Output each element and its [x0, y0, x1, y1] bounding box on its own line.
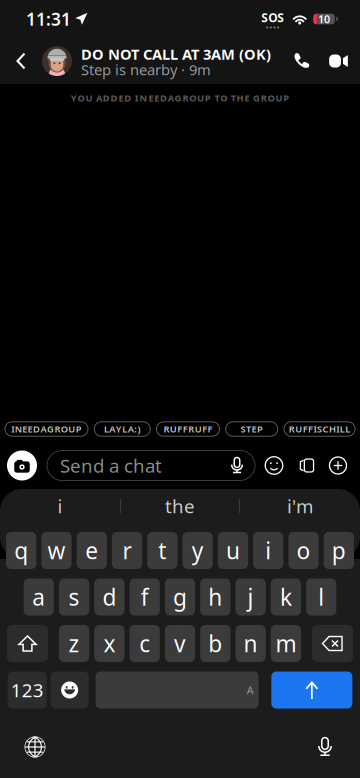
button[interactable]: A [96, 671, 259, 708]
staticText: l [318, 582, 324, 612]
staticText: RUFFISCHILL [289, 423, 350, 435]
button[interactable]: a [24, 578, 54, 615]
staticText: f [141, 582, 149, 612]
staticText: LAYLA:) [104, 423, 141, 435]
staticText: i [265, 535, 271, 565]
staticText: i [57, 494, 62, 518]
button[interactable]: Video call [321, 41, 356, 81]
button[interactable]: m [271, 625, 301, 662]
button[interactable]: Stickers [290, 449, 322, 481]
button[interactable]: k [271, 578, 301, 615]
staticText: x [103, 628, 115, 658]
button[interactable]: z [59, 625, 89, 662]
staticText: 10 [318, 12, 330, 26]
button[interactable]: h [200, 578, 230, 615]
staticText: 123 [11, 678, 44, 702]
staticText: Send a chat [60, 453, 162, 478]
button[interactable]: f [130, 578, 160, 615]
button[interactable] [312, 625, 353, 662]
button[interactable]: e [77, 532, 107, 569]
staticText: i'm [287, 494, 313, 518]
button[interactable]: c [130, 625, 160, 662]
button[interactable]: i'm [240, 489, 360, 523]
button[interactable]: t [147, 532, 177, 569]
button[interactable]: l [306, 578, 336, 615]
staticText: m [275, 628, 296, 658]
staticText: c [139, 628, 150, 658]
button[interactable]: the [121, 489, 239, 523]
button[interactable]: i [0, 489, 120, 523]
staticText: t [158, 535, 166, 565]
staticText: 11:31 [26, 7, 71, 30]
button[interactable]: More [322, 449, 354, 481]
button[interactable]: RUFFISCHILL [284, 419, 355, 439]
button[interactable]: r [112, 532, 142, 569]
staticText: RUFFRUFF [163, 423, 213, 435]
button[interactable]: INEEDAGROUP [5, 419, 88, 439]
staticText: STEP [241, 423, 263, 435]
button[interactable]: j [235, 578, 266, 615]
staticText: r [122, 535, 131, 565]
button[interactable]: x [94, 625, 124, 662]
button[interactable]: Camera [7, 450, 37, 480]
staticText: s [69, 582, 80, 612]
staticText: b [208, 628, 222, 658]
staticText: g [173, 582, 187, 612]
staticText: A [247, 683, 254, 697]
staticText: p [332, 535, 346, 565]
staticText: k [280, 582, 292, 612]
button[interactable] [51, 671, 89, 708]
staticText: SOS [261, 9, 284, 25]
staticText: e [85, 535, 98, 565]
button[interactable]: Voice input [303, 725, 347, 769]
button[interactable]: 123 [8, 671, 47, 708]
button[interactable]: q [6, 532, 36, 569]
button[interactable]: b [200, 625, 230, 662]
staticText: q [14, 535, 28, 565]
button[interactable]: Switch language [13, 725, 57, 769]
button[interactable]: i [253, 532, 283, 569]
button[interactable]: u [218, 532, 248, 569]
button[interactable]: STEP [226, 419, 278, 439]
staticText: the [165, 494, 195, 518]
button[interactable]: v [165, 625, 195, 662]
button[interactable]: Emoji [258, 449, 290, 481]
button[interactable]: Voice call [281, 41, 321, 81]
button[interactable]: n [235, 625, 266, 662]
staticText: YOU ADDED INEEDAGROUP TO THE GROUP [71, 92, 289, 104]
staticText: a [32, 582, 45, 612]
button[interactable]: w [41, 532, 72, 569]
staticText: v [174, 628, 186, 658]
staticText: d [102, 582, 116, 612]
button[interactable]: o [288, 532, 319, 569]
button[interactable]: Voice note [225, 451, 249, 479]
button[interactable]: s [59, 578, 89, 615]
button[interactable]: RUFFRUFF [156, 419, 219, 439]
button[interactable] [271, 671, 352, 708]
button[interactable]: p [324, 532, 354, 569]
button[interactable]: LAYLA:) [94, 419, 150, 439]
staticText: o [297, 535, 311, 565]
staticText: INEEDAGROUP [11, 423, 82, 435]
staticText: z [69, 628, 80, 658]
staticText: n [244, 628, 258, 658]
button[interactable]: Back [5, 41, 37, 81]
button[interactable]: d [94, 578, 124, 615]
staticText: Step is nearby · 9m [81, 60, 211, 79]
staticText: y [192, 535, 204, 565]
button[interactable]: g [165, 578, 195, 615]
staticText: h [208, 582, 222, 612]
staticText: j [248, 582, 254, 612]
staticText: DO NOT CALL AT 3AM (OK) [81, 44, 271, 64]
button[interactable]: y [183, 532, 213, 569]
button[interactable] [7, 625, 48, 662]
staticText: w [47, 535, 65, 565]
staticText: u [226, 535, 240, 565]
